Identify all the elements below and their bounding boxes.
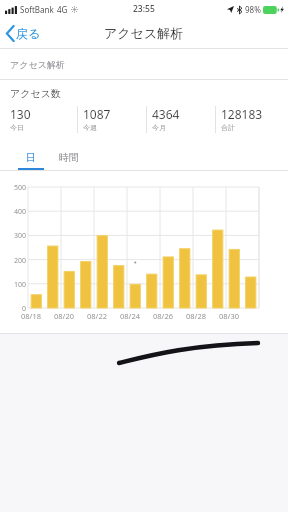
staticText: 今月	[152, 123, 166, 132]
button[interactable]: 日	[18, 151, 44, 170]
staticText: 128183	[221, 106, 263, 122]
staticText: 1087	[83, 106, 111, 122]
staticText: 0	[2, 304, 26, 314]
staticText: 08/24	[114, 311, 146, 321]
button[interactable]: 時間	[56, 151, 82, 170]
button[interactable]: 戻る	[0, 21, 51, 46]
staticText: 08/18	[15, 311, 47, 321]
staticText: 戻る	[16, 26, 41, 41]
staticText: 100	[2, 280, 26, 290]
staticText: 08/28	[180, 311, 212, 321]
staticText: 時間	[59, 151, 79, 164]
staticText: アクセス解析	[10, 59, 65, 70]
staticText: 4G	[57, 4, 68, 15]
staticText: 400	[2, 207, 26, 217]
staticText: 300	[2, 231, 26, 241]
staticText: アクセス解析	[104, 25, 184, 41]
staticText: 500	[2, 183, 26, 193]
staticText: 130	[10, 106, 31, 122]
staticText: 今日	[10, 123, 24, 132]
staticText: 23:55	[133, 3, 155, 15]
staticText: 合計	[221, 123, 235, 132]
staticText: 98%	[245, 4, 261, 15]
staticText: 4364	[152, 106, 180, 122]
staticText: 08/22	[81, 311, 113, 321]
staticText: 08/20	[48, 311, 80, 321]
staticText: 08/26	[147, 311, 179, 321]
staticText: SoftBank	[20, 4, 54, 15]
staticText: 今週	[83, 123, 97, 132]
staticText: アクセス数	[10, 87, 61, 100]
staticText: 08/30	[213, 311, 245, 321]
staticText: 200	[2, 256, 26, 266]
staticText: 日	[26, 151, 36, 164]
